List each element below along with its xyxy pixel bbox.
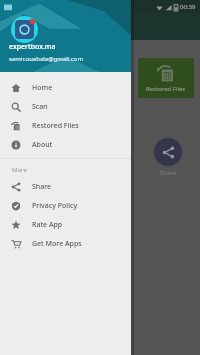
- button[interactable]: Privacy Policy: [0, 196, 131, 215]
- staticText: Restored Files: [32, 121, 79, 131]
- staticText: 00:39: [180, 3, 196, 11]
- button[interactable]: About: [0, 135, 131, 154]
- button[interactable]: Restored Files: [0, 116, 131, 135]
- button[interactable]: Scan: [0, 97, 131, 116]
- staticText: Home: [32, 83, 53, 93]
- staticText: Get More Apps: [32, 239, 82, 249]
- button[interactable]: Share: [154, 138, 182, 166]
- staticText: Share: [32, 182, 52, 192]
- staticText: expertbox.ma: [9, 42, 56, 52]
- button[interactable]: Restored Files: [138, 58, 194, 98]
- staticText: Privacy Policy: [32, 201, 78, 211]
- staticText: samir.ouabala@gmail.com: [9, 55, 84, 63]
- button[interactable]: Share: [0, 177, 131, 196]
- staticText: Restored Files: [146, 85, 186, 93]
- button[interactable]: Rate App: [0, 215, 131, 234]
- staticText: About: [32, 140, 53, 150]
- button[interactable]: Home: [0, 78, 131, 97]
- staticText: Rate App: [32, 220, 63, 230]
- button[interactable]: Get More Apps: [0, 234, 131, 253]
- staticText: Scan: [32, 102, 48, 112]
- staticText: Share: [160, 169, 177, 177]
- staticText: More: [12, 166, 27, 174]
